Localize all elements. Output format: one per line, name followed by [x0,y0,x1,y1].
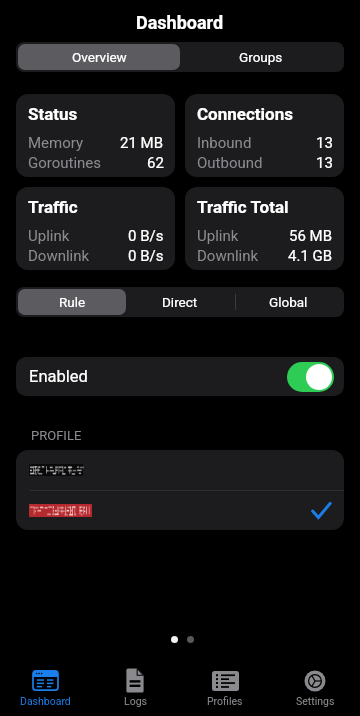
button[interactable]: Selected [16,491,344,530]
staticText: Direct [162,294,198,310]
other: Selected [311,501,331,521]
staticText: Profiles [207,695,243,707]
button[interactable]: Traffic [16,187,175,270]
staticText: 13 [316,154,333,172]
staticText: Downlink [28,247,90,265]
staticText: PROFILE [31,428,82,443]
staticText: Settings [296,695,335,707]
button[interactable]: Direct [126,289,234,315]
staticText: Traffic [28,197,78,217]
button[interactable]: Enabled [16,357,344,396]
staticText: Overview [72,49,127,65]
staticText: Uplink [28,227,70,245]
button[interactable]: Settings [270,650,360,716]
button[interactable]: Connections [185,94,344,177]
staticText: Downlink [197,247,259,265]
button[interactable]: Groups [180,44,342,70]
button[interactable]: Traffic Total [185,187,344,270]
staticText: 21 MB [120,134,164,152]
staticText: Enabled [29,367,88,386]
button[interactable]: Status [16,94,175,177]
staticText: Dashboard [136,12,224,33]
staticText: Inbound [197,134,252,152]
staticText: Rule [59,294,86,310]
staticText: Uplink [197,227,239,245]
button[interactable]: Logs [90,650,180,716]
button[interactable] [16,450,344,490]
staticText: Global [269,294,308,310]
staticText: Status [28,104,78,124]
staticText: Goroutines [28,154,102,172]
button[interactable]: Rule [18,289,126,315]
staticText: Connections [197,104,293,124]
button[interactable]: Profiles [180,650,270,716]
staticText: 13 [316,134,333,152]
staticText: 4.1 GB [288,247,333,265]
staticText: Groups [239,49,283,65]
button[interactable]: Dashboard [0,650,90,716]
staticText: 0 B/s [128,227,164,245]
staticText: Dashboard [20,695,71,707]
staticText: 0 B/s [128,247,164,265]
button[interactable]: Global [234,289,342,315]
staticText: 56 MB [289,227,333,245]
staticText: Memory [28,134,84,152]
staticText: 62 [147,154,164,172]
staticText: Logs [124,695,147,707]
button[interactable]: Overview [18,44,180,70]
staticText: Outbound [197,154,263,172]
staticText: Traffic Total [197,197,289,217]
